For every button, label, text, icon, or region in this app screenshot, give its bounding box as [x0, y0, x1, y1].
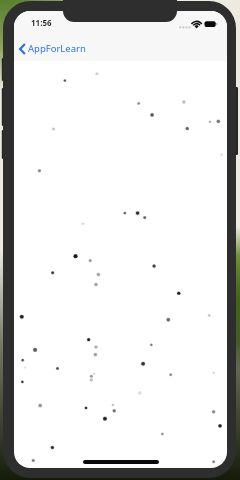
button[interactable]: Back	[17, 39, 94, 58]
staticText: AppForLearn	[28, 42, 86, 55]
staticText: 11:56	[31, 17, 52, 28]
other: Back	[19, 43, 26, 55]
